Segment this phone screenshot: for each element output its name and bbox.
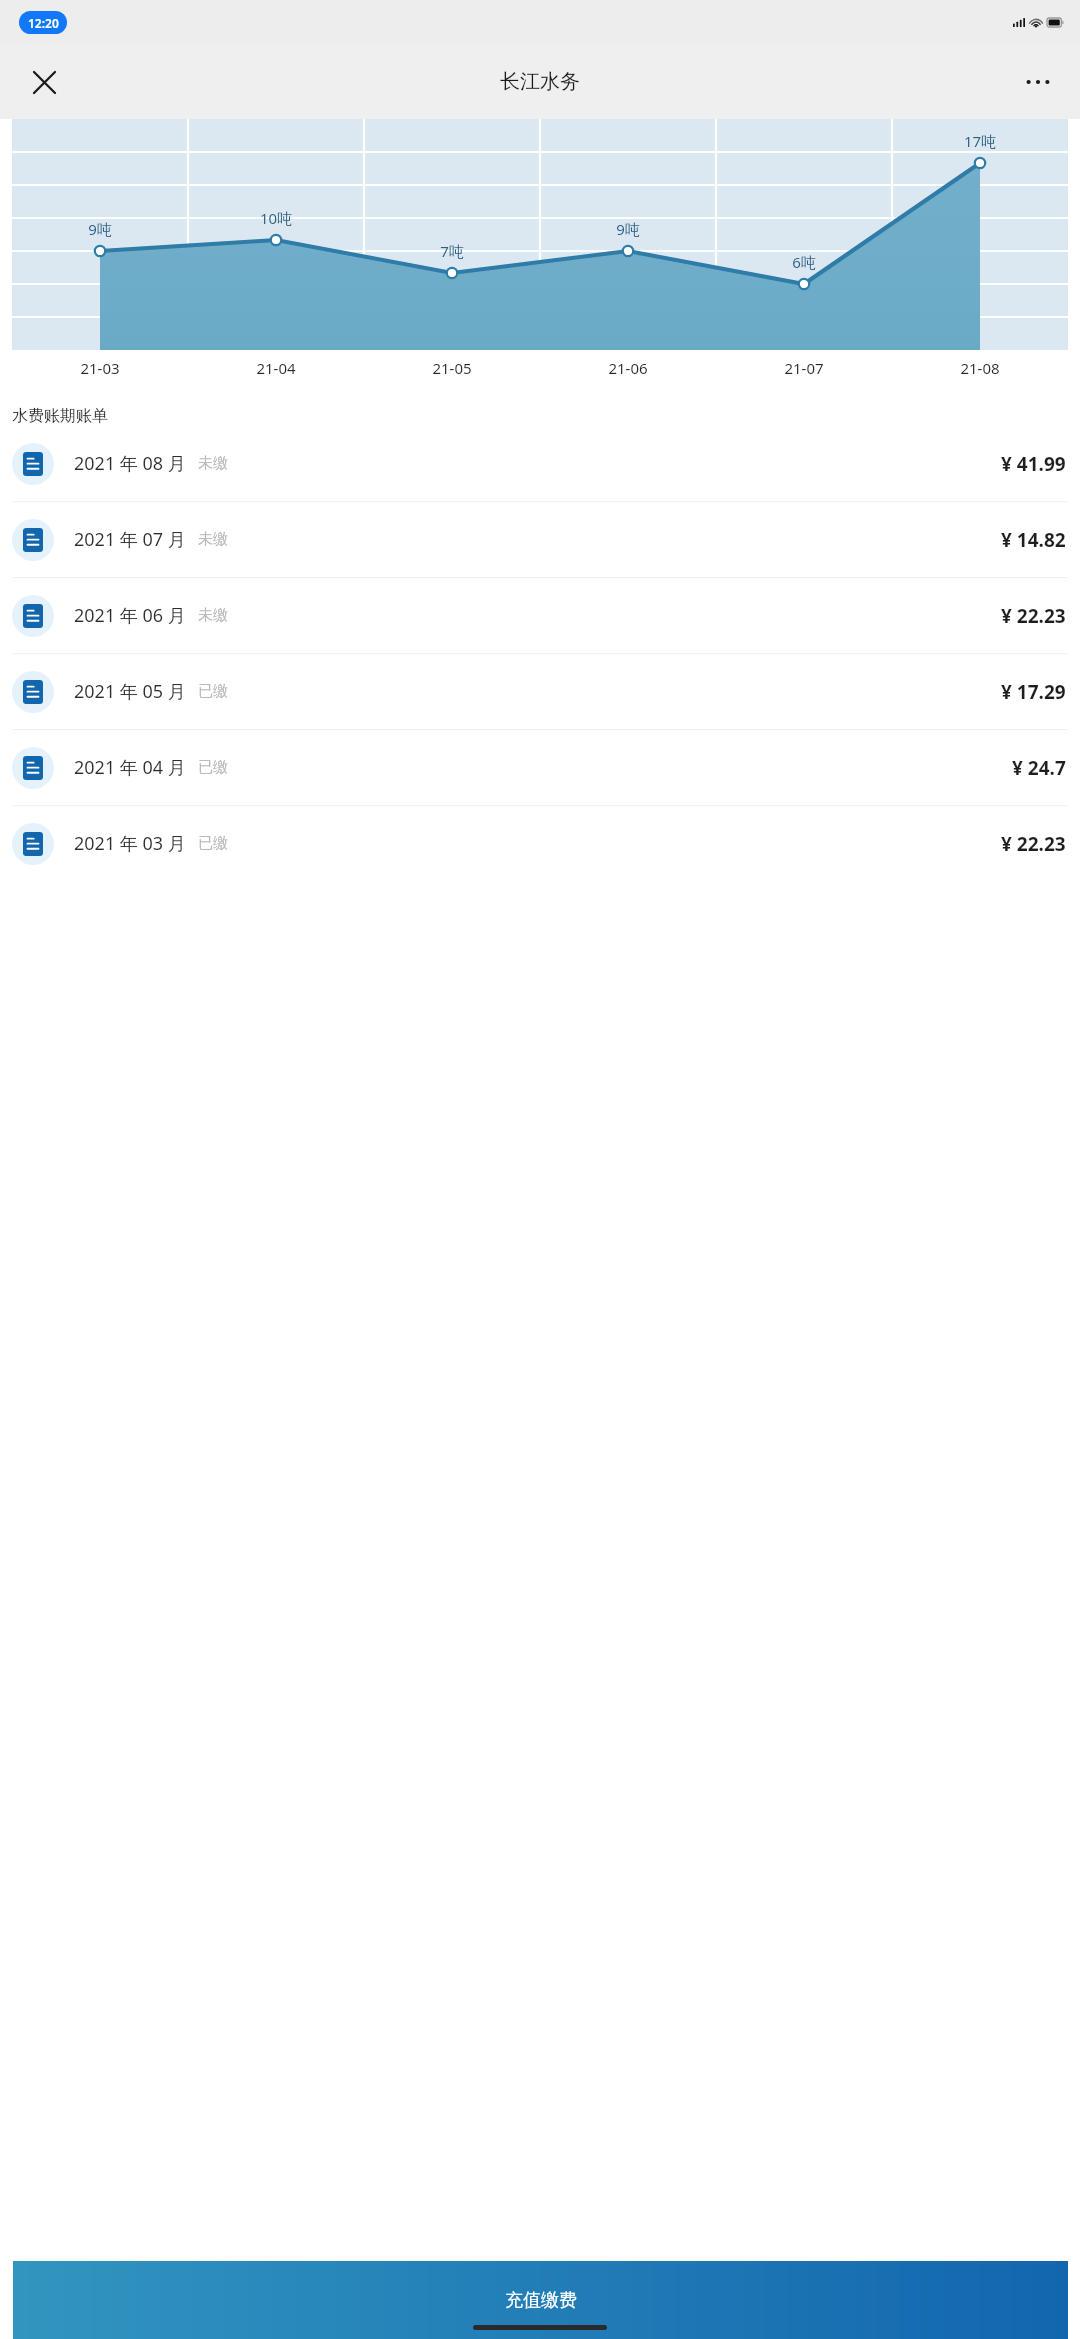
staticText: 21-03 (12, 358, 188, 378)
staticText: 未缴 (198, 454, 228, 473)
staticText: 21-06 (540, 358, 716, 378)
staticText: 已缴 (198, 834, 228, 853)
button[interactable]: 2021 年 06 月 (0, 578, 1080, 653)
staticText: 2021 年 07 月 (74, 527, 186, 552)
staticText: 7吨 (417, 241, 487, 261)
staticText: ¥ 41.99 (1001, 451, 1066, 477)
staticText: 已缴 (198, 758, 228, 777)
staticText: 21-07 (716, 358, 892, 378)
staticText: 10吨 (241, 208, 311, 228)
button[interactable]: More options (1016, 60, 1060, 104)
button[interactable]: 2021 年 04 月 (0, 730, 1080, 805)
staticText: 2021 年 04 月 (74, 755, 186, 780)
button[interactable]: Close (22, 60, 66, 104)
staticText: 17吨 (945, 131, 1015, 151)
staticText: 6吨 (769, 252, 839, 272)
button[interactable]: 2021 年 07 月 (0, 502, 1080, 577)
staticText: 9吨 (593, 219, 663, 239)
staticText: ¥ 22.23 (1001, 603, 1066, 629)
button[interactable]: 2021 年 05 月 (0, 654, 1080, 729)
staticText: 21-05 (364, 358, 540, 378)
button[interactable]: 充值缴费 (13, 2261, 1068, 2339)
staticText: 长江水务 (500, 69, 580, 94)
button[interactable]: 2021 年 08 月 (0, 426, 1080, 501)
staticText: 未缴 (198, 530, 228, 549)
staticText: 9吨 (65, 219, 135, 239)
staticText: 未缴 (198, 606, 228, 625)
staticText: ¥ 14.82 (1001, 527, 1066, 553)
staticText: 2021 年 08 月 (74, 451, 186, 476)
staticText: ¥ 24.7 (1012, 755, 1066, 781)
staticText: 水费账期账单 (12, 406, 108, 426)
staticText: ¥ 22.23 (1001, 831, 1066, 857)
staticText: 21-04 (188, 358, 364, 378)
staticText: 21-08 (892, 358, 1068, 378)
button[interactable]: 2021 年 03 月 (0, 806, 1080, 881)
staticText: 2021 年 06 月 (74, 603, 186, 628)
staticText: 已缴 (198, 682, 228, 701)
staticText: 12:20 (28, 15, 59, 31)
staticText: 2021 年 05 月 (74, 679, 186, 704)
staticText: 充值缴费 (505, 2289, 577, 2312)
staticText: 2021 年 03 月 (74, 831, 186, 856)
staticText: ¥ 17.29 (1001, 679, 1066, 705)
